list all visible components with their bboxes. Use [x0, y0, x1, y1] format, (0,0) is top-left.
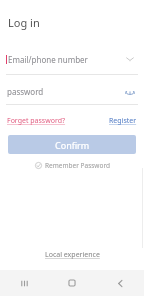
staticText: Register — [109, 116, 137, 126]
button[interactable]: Show saved accounts — [124, 53, 136, 65]
staticText: Confirm — [55, 139, 90, 151]
staticText: Local experience — [45, 250, 100, 260]
button[interactable]: Register — [109, 115, 137, 127]
button[interactable]: Back — [96, 270, 144, 296]
button[interactable]: Show password — [123, 85, 136, 98]
button[interactable]: Forget password? — [7, 115, 66, 127]
staticText: Log in — [8, 15, 40, 30]
button[interactable]: Recent apps — [0, 270, 48, 296]
button[interactable]: Confirm — [8, 135, 136, 154]
button[interactable]: Home — [48, 270, 96, 296]
button[interactable]: Remember Password — [33, 160, 112, 171]
button[interactable]: password — [0, 85, 144, 101]
staticText: Remember Password — [45, 161, 110, 170]
staticText: Email/phone number — [8, 54, 88, 65]
staticText: password — [7, 86, 44, 97]
staticText: Forget password? — [7, 116, 66, 126]
button[interactable]: Email/phone number — [0, 53, 144, 71]
button[interactable]: Local experience — [41, 248, 104, 262]
